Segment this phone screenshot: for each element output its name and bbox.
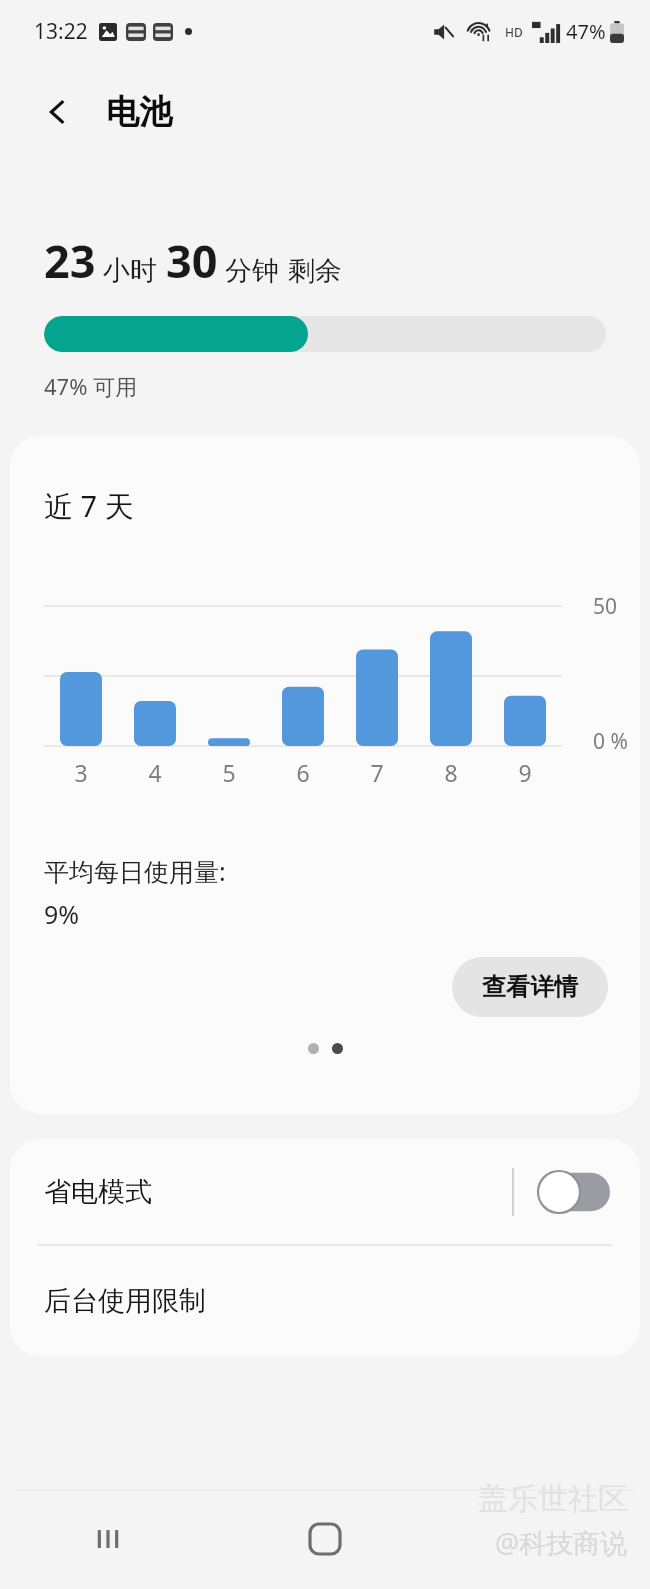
staticText: 剩余 bbox=[288, 254, 342, 288]
staticText: 小时 bbox=[103, 254, 157, 288]
staticText: 47% bbox=[566, 18, 606, 45]
staticText: 7 bbox=[370, 757, 384, 788]
button[interactable]: Back bbox=[433, 1489, 650, 1589]
staticText: 23 bbox=[44, 230, 96, 291]
staticText: 4 bbox=[148, 757, 162, 788]
staticText: 电池 bbox=[106, 91, 172, 133]
staticText: HD bbox=[505, 24, 523, 40]
staticText: 6 bbox=[296, 757, 310, 788]
button[interactable]: Home bbox=[216, 1489, 433, 1589]
button[interactable]: 省电模式 bbox=[10, 1139, 640, 1244]
button[interactable]: Back bbox=[30, 85, 84, 139]
button[interactable]: 近 7 天 bbox=[10, 436, 640, 1114]
button[interactable]: 查看详情 bbox=[452, 957, 608, 1017]
button[interactable]: 后台使用限制 bbox=[10, 1246, 640, 1356]
staticText: 9% bbox=[44, 897, 80, 931]
staticText: 分钟 bbox=[225, 254, 279, 288]
staticText: 省电模式 bbox=[44, 1175, 152, 1209]
staticText: 后台使用限制 bbox=[44, 1284, 206, 1318]
staticText: 平均每日使用量: bbox=[44, 854, 226, 888]
staticText: 盖乐世社区 bbox=[478, 1480, 628, 1518]
staticText: 50 bbox=[593, 592, 618, 621]
staticText: 47% 可用 bbox=[44, 371, 138, 401]
staticText: 近 7 天 bbox=[44, 486, 134, 526]
staticText: 13:22 bbox=[34, 17, 88, 46]
staticText: 9 bbox=[518, 757, 532, 788]
staticText: 5 bbox=[222, 757, 236, 788]
staticText: 0 % bbox=[593, 727, 628, 756]
staticText: 3 bbox=[74, 757, 88, 788]
button[interactable]: Recent apps bbox=[0, 1489, 216, 1589]
button[interactable]: Power saving toggle bbox=[538, 1171, 610, 1213]
staticText: 8 bbox=[444, 757, 458, 788]
staticText: @科技商说 bbox=[495, 1524, 628, 1561]
staticText: 30 bbox=[166, 230, 218, 291]
staticText: 查看详情 bbox=[482, 972, 578, 1002]
